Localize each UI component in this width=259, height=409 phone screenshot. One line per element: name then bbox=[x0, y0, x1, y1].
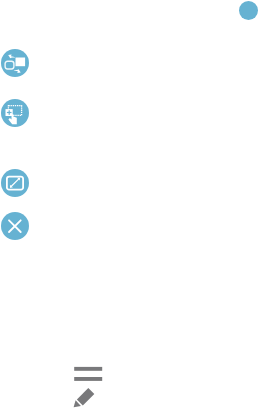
button[interactable]: Mirror screen bbox=[1, 49, 29, 77]
button[interactable]: Close bbox=[1, 212, 29, 240]
button[interactable]: Resize bbox=[1, 169, 29, 197]
button[interactable]: Add selection bbox=[1, 99, 29, 127]
button[interactable]: Account bbox=[239, 1, 258, 20]
button[interactable]: Edit notes bbox=[70, 362, 110, 409]
